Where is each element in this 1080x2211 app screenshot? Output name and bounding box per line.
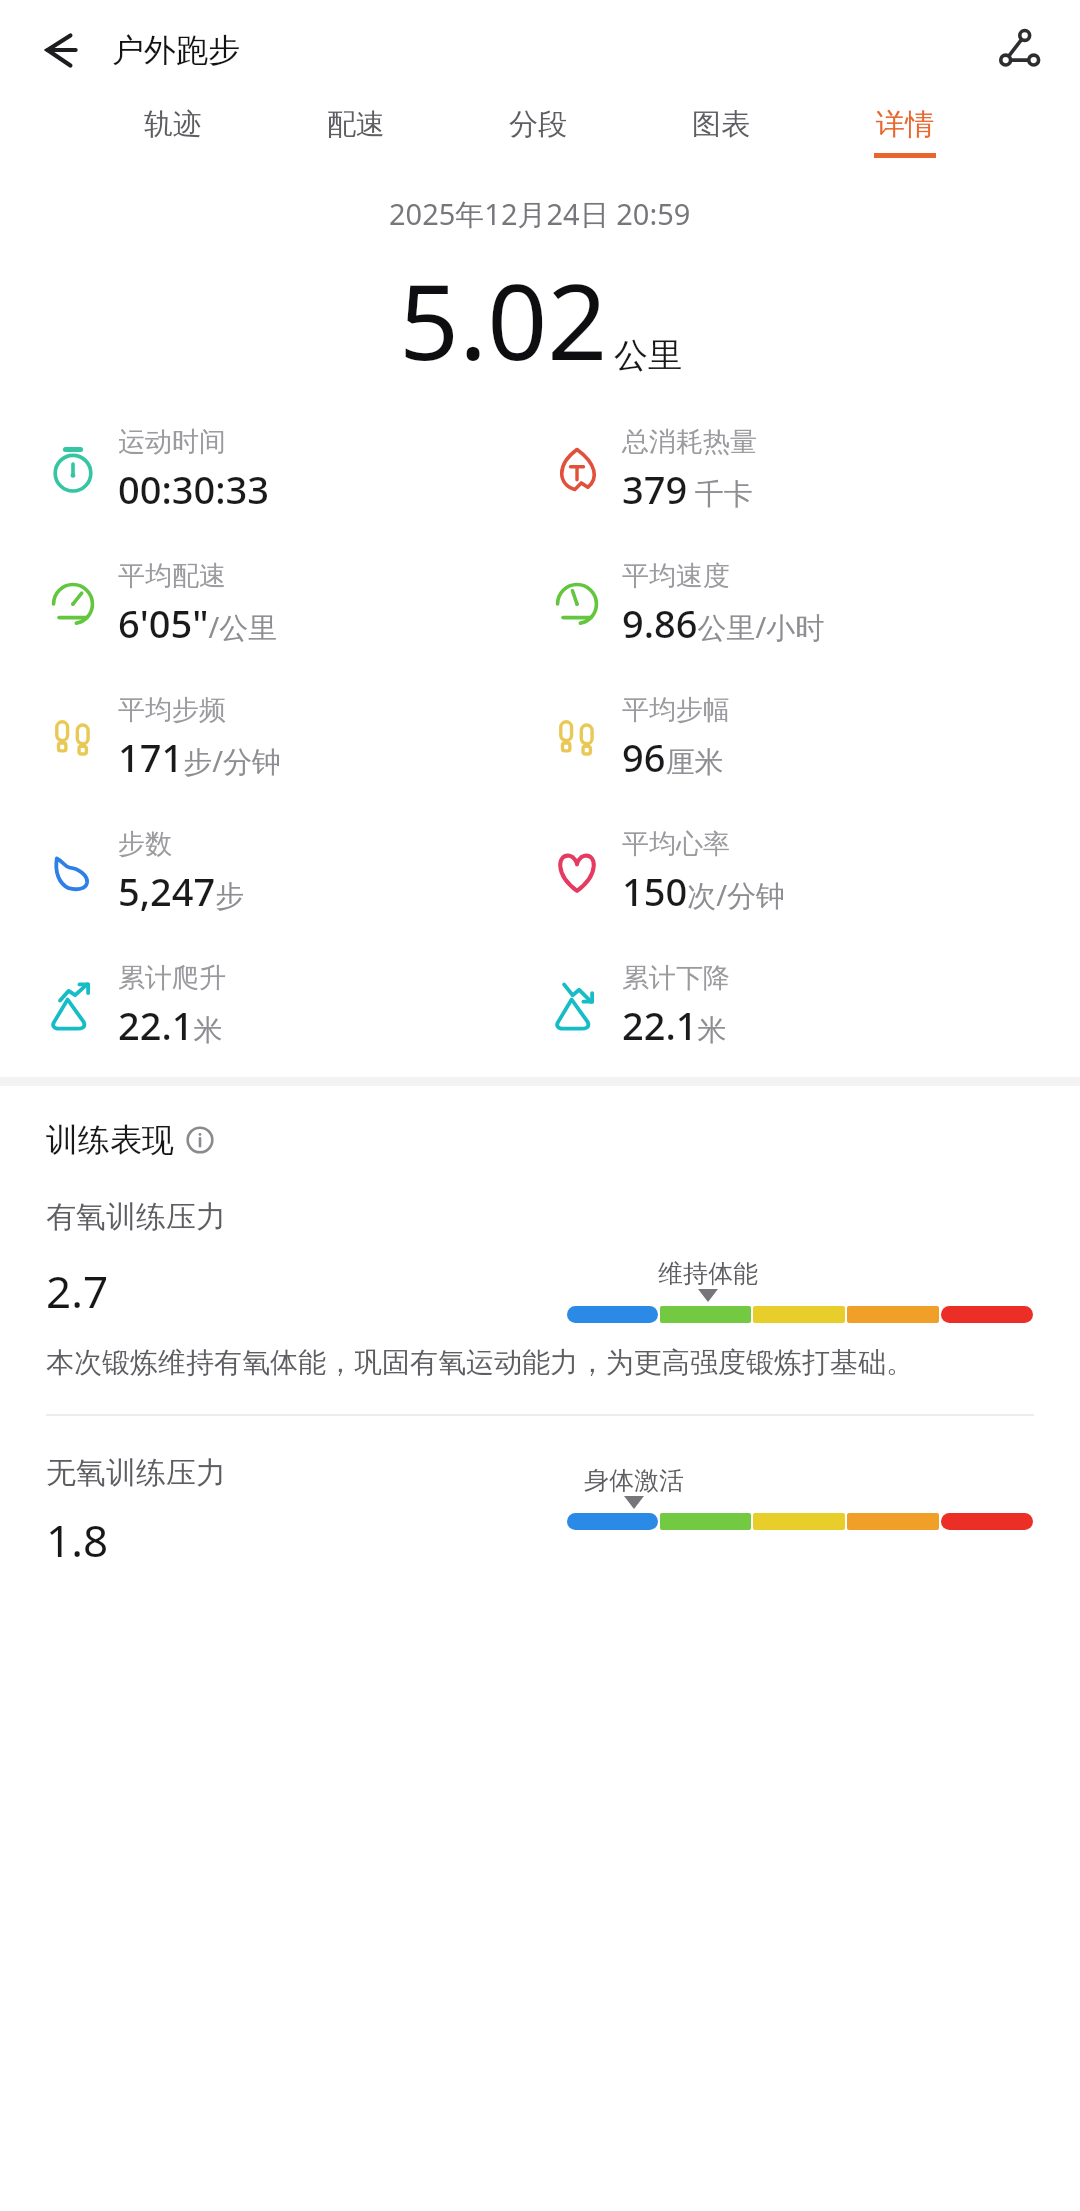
button[interactable]: 平均步频 (46, 693, 540, 783)
button[interactable]: 平均步幅 (550, 693, 1080, 783)
staticText: 平均步幅 (622, 693, 730, 727)
staticText: 2025年12月24日 20:59 (389, 194, 691, 234)
staticText: 本次锻炼维持有氧体能，巩固有氧运动能力，为更高强度锻炼打基础。 (46, 1345, 914, 1380)
staticText: 运动时间 (118, 425, 226, 459)
button[interactable]: 配速 (323, 100, 389, 164)
staticText: 2.7 (46, 1261, 109, 1321)
button[interactable]: 平均速度 (550, 559, 1080, 649)
staticText: 平均步频 (118, 693, 226, 727)
staticText: 累计爬升 (118, 961, 226, 995)
staticText: 1.8 (46, 1510, 109, 1570)
staticText: 训练表现 (46, 1120, 174, 1160)
button[interactable]: 图表 (688, 100, 754, 164)
button[interactable]: 轨迹 (140, 100, 206, 164)
staticText: 150次/分钟 (622, 865, 785, 917)
staticText: 379 千卡 (622, 463, 753, 515)
button[interactable]: 训练表现 (46, 1120, 214, 1160)
staticText: 身体激活 (584, 1465, 684, 1496)
staticText: 171步/分钟 (118, 731, 281, 783)
staticText: 6'05"/公里 (118, 597, 278, 649)
staticText: 5,247步 (118, 865, 245, 917)
button[interactable]: 详情 (870, 100, 940, 164)
staticText: 有氧训练压力 (46, 1198, 226, 1236)
staticText: 平均速度 (622, 559, 730, 593)
button[interactable]: 步数 (46, 827, 540, 917)
staticText: 22.1米 (622, 999, 727, 1051)
staticText: 配速 (327, 106, 385, 143)
staticText: 22.1米 (118, 999, 223, 1051)
staticText: 分段 (509, 106, 567, 143)
staticText: 维持体能 (658, 1258, 758, 1289)
staticText: 00:30:33 (118, 463, 270, 515)
staticText: 图表 (692, 106, 750, 143)
staticText: 96厘米 (622, 731, 724, 783)
staticText: 总消耗热量 (622, 425, 757, 459)
button[interactable]: 总消耗热量 (550, 425, 1080, 515)
button[interactable]: 累计下降 (550, 961, 1080, 1051)
staticText: 9.86公里/小时 (622, 597, 825, 649)
staticText: 5.02 (399, 248, 608, 391)
button[interactable]: 累计爬升 (46, 961, 540, 1051)
button[interactable]: 平均配速 (46, 559, 540, 649)
staticText: 累计下降 (622, 961, 730, 995)
staticText: 轨迹 (144, 106, 202, 143)
button[interactable]: Share (990, 22, 1046, 78)
staticText: 公里 (614, 334, 682, 377)
staticText: 平均心率 (622, 827, 730, 861)
staticText: 步数 (118, 827, 172, 861)
staticText: 户外跑步 (112, 30, 240, 70)
staticText: 详情 (876, 106, 934, 143)
button[interactable]: 分段 (505, 100, 571, 164)
staticText: 无氧训练压力 (46, 1454, 226, 1492)
staticText: 平均配速 (118, 559, 226, 593)
button[interactable]: Back (34, 24, 86, 76)
button[interactable]: 运动时间 (46, 425, 540, 515)
button[interactable]: 平均心率 (550, 827, 1080, 917)
